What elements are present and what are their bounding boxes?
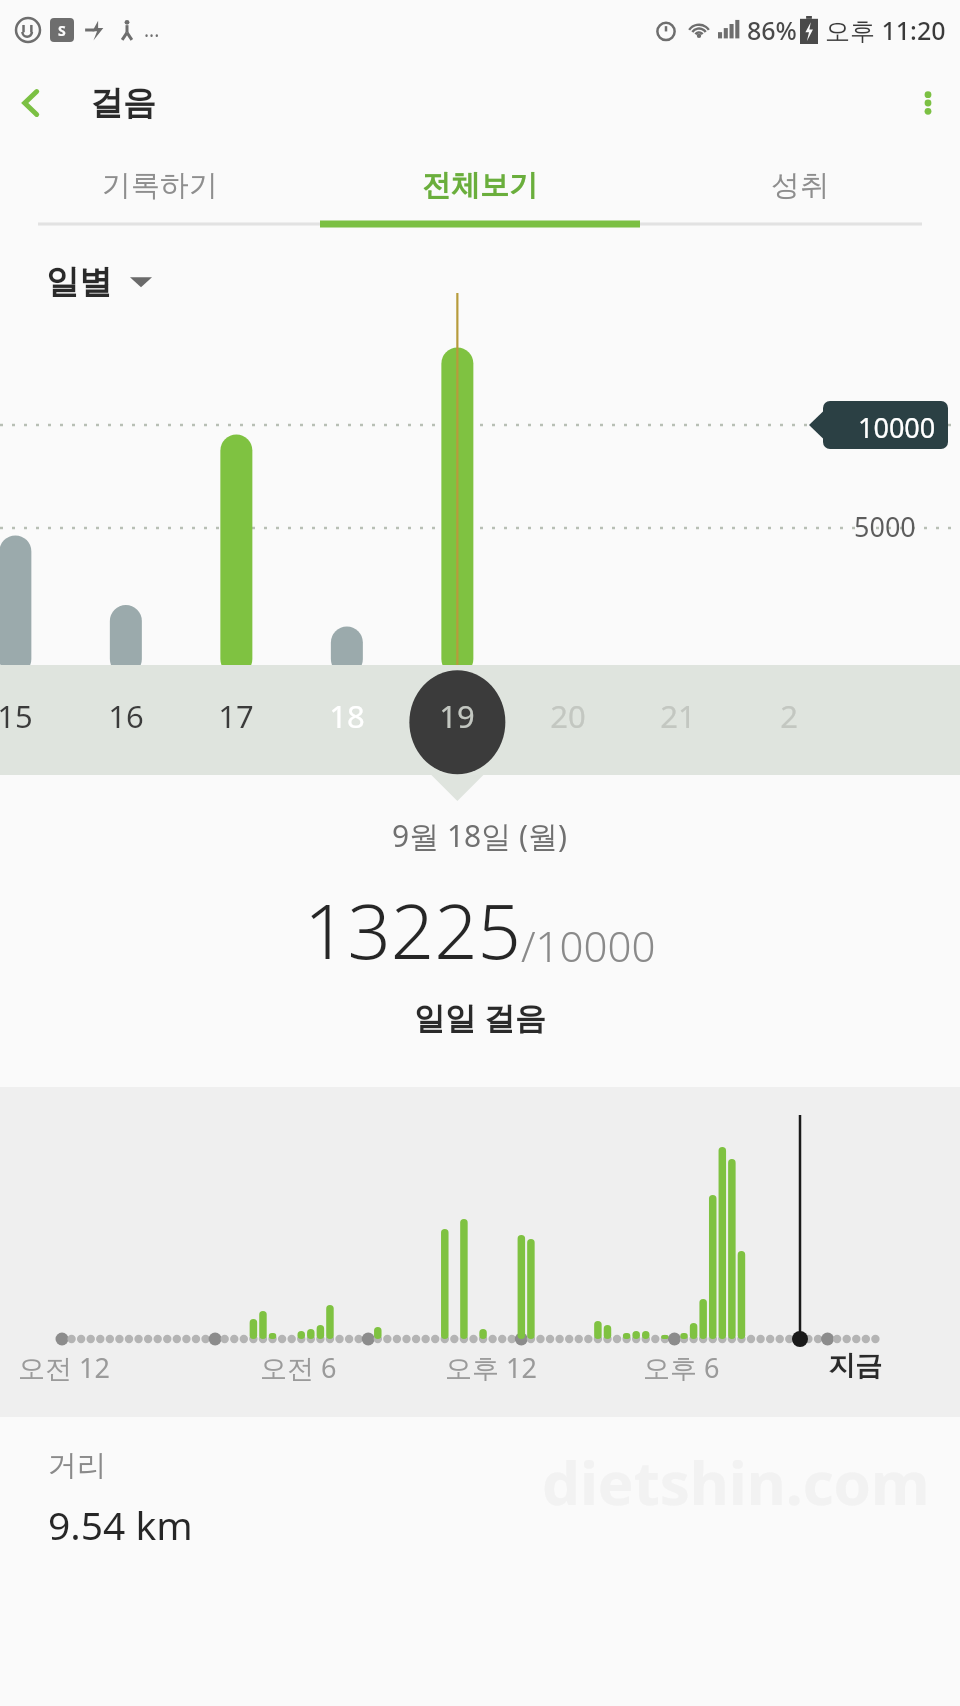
staticText: 오후 11:20 — [825, 13, 946, 47]
button[interactable]: 기록하기 — [0, 146, 320, 224]
staticText: 오후 12 — [445, 1349, 537, 1386]
staticText: 일별 — [46, 261, 112, 303]
button[interactable]: 전체보기 — [320, 146, 640, 224]
button[interactable]: 일별 — [46, 261, 152, 303]
button[interactable]: 21 — [653, 695, 703, 737]
staticText: S — [58, 21, 66, 40]
button[interactable]: 성취 — [640, 146, 960, 224]
staticText: ... — [144, 17, 160, 43]
staticText: 9.54 km — [48, 1498, 193, 1551]
staticText: 거리 — [48, 1447, 106, 1484]
staticText: 기록하기 — [102, 167, 218, 204]
button[interactable]: 20 — [543, 695, 593, 737]
staticText: 일일 걸음 — [414, 996, 547, 1038]
button[interactable]: 16 — [101, 695, 151, 737]
staticText: 5000 — [854, 508, 916, 545]
staticText: /10000 — [521, 917, 656, 974]
staticText: 10000 — [858, 409, 936, 446]
button[interactable]: 18 — [322, 695, 372, 737]
button[interactable]: 17 — [211, 695, 261, 737]
staticText: 성취 — [771, 167, 829, 204]
staticText: 오전 12 — [18, 1349, 110, 1386]
button[interactable]: 2 — [764, 695, 814, 737]
staticText: 13225 — [304, 878, 521, 982]
staticText: 9월 18일 (월) — [392, 815, 568, 856]
staticText: 오후 6 — [643, 1349, 720, 1386]
button[interactable]: Back — [0, 71, 64, 135]
staticText: 오전 6 — [260, 1349, 337, 1386]
staticText: 86% — [747, 13, 797, 47]
staticText: dietshin.com — [542, 1441, 930, 1523]
staticText: 지금 — [828, 1349, 882, 1383]
button[interactable]: 15 — [0, 695, 40, 737]
button[interactable]: 19 — [432, 695, 482, 737]
button[interactable]: More options — [896, 71, 960, 135]
staticText: 걸음 — [90, 82, 156, 124]
staticText: 전체보기 — [422, 167, 538, 204]
